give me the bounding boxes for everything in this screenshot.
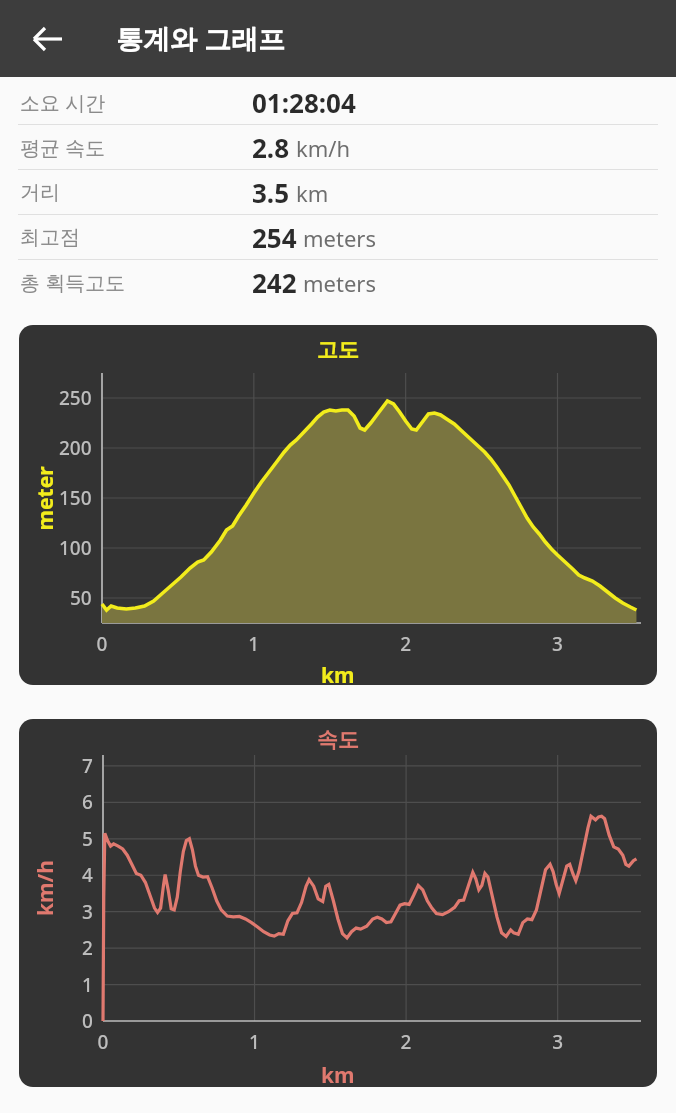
button[interactable]: Back [22, 13, 74, 65]
staticText: 242 [252, 265, 297, 300]
staticText: meters [303, 223, 376, 253]
button[interactable]: 최고점 [0, 215, 676, 259]
staticText: 3.5 [252, 175, 290, 210]
staticText: 최고점 [20, 225, 80, 250]
staticText: 소요 시간 [20, 89, 106, 116]
staticText: 거리 [20, 180, 60, 205]
staticText: meters [303, 268, 376, 298]
button[interactable]: 거리 [0, 170, 676, 214]
button[interactable] [19, 719, 657, 1087]
staticText: 254 [252, 220, 297, 255]
button[interactable]: 총 획득고도 [0, 260, 676, 304]
staticText: 2.8 [252, 130, 290, 165]
staticText: km/h [296, 133, 351, 163]
staticText: 통계와 그래프 [116, 20, 286, 57]
staticText: km [296, 178, 329, 208]
button[interactable]: 평균 속도 [0, 125, 676, 169]
button[interactable]: 소요 시간 [0, 80, 676, 124]
button[interactable] [19, 325, 657, 685]
staticText: 01:28:04 [252, 85, 356, 120]
staticText: 총 획득고도 [20, 269, 126, 296]
staticText: 평균 속도 [20, 134, 106, 161]
